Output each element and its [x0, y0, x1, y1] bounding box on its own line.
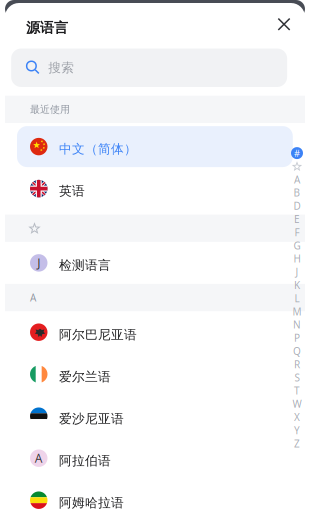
button[interactable]: T [291, 384, 303, 397]
button[interactable]: B [291, 186, 303, 199]
button[interactable]: 阿姆哈拉语 [5, 479, 305, 520]
button[interactable]: N [291, 318, 303, 331]
button[interactable]: 关闭 [269, 9, 299, 39]
staticText: B [293, 186, 300, 199]
button[interactable]: E [291, 212, 303, 226]
button[interactable]: X [291, 410, 303, 424]
staticText: J [37, 255, 40, 271]
staticText: D [293, 199, 300, 213]
staticText: E [294, 212, 300, 226]
button[interactable]: S [291, 371, 303, 384]
staticText: 英语 [59, 183, 85, 199]
button[interactable]: K [291, 278, 303, 292]
button[interactable]: A [5, 437, 305, 479]
button[interactable]: A [291, 173, 303, 186]
staticText: 最近使用 [30, 103, 70, 116]
button[interactable]: P [291, 331, 303, 344]
staticText: Z [294, 437, 300, 450]
staticText: A [35, 450, 43, 466]
staticText: H [293, 252, 300, 265]
staticText: 爱尔兰语 [59, 369, 111, 385]
staticText: S [294, 371, 299, 384]
button[interactable]: 中文（简体） [5, 126, 305, 168]
button[interactable]: 爱沙尼亚语 [5, 395, 305, 437]
button[interactable]: L [291, 292, 303, 305]
staticText: W [292, 397, 301, 411]
button[interactable]: M [291, 305, 303, 318]
staticText: J [295, 265, 298, 279]
staticText: M [292, 305, 301, 318]
staticText: X [294, 410, 300, 424]
button[interactable]: G [291, 239, 303, 252]
staticText: 阿尔巴尼亚语 [59, 327, 137, 343]
staticText: P [294, 331, 300, 345]
staticText: 阿姆哈拉语 [59, 495, 124, 511]
button[interactable]: 收藏 [291, 160, 303, 173]
staticText: 检测语言 [59, 257, 111, 273]
staticText: 爱沙尼亚语 [59, 411, 124, 427]
button[interactable]: Q [291, 344, 303, 358]
staticText: # [294, 147, 300, 159]
staticText: G [293, 239, 300, 252]
button[interactable]: H [291, 252, 303, 265]
button[interactable]: J [291, 265, 303, 278]
button[interactable]: # [291, 146, 303, 160]
staticText: L [294, 291, 299, 305]
button[interactable]: Z [291, 437, 303, 450]
staticText: A [30, 291, 36, 304]
staticText: A [294, 173, 300, 186]
button[interactable]: 英语 [5, 168, 305, 210]
staticText: 中文（简体） [59, 141, 137, 157]
staticText: Y [294, 423, 300, 437]
button[interactable]: J [5, 242, 305, 284]
staticText: F [294, 225, 299, 239]
staticText: 搜索 [48, 60, 74, 76]
staticText: Q [293, 344, 301, 358]
staticText: K [294, 278, 300, 292]
button[interactable]: W [291, 397, 303, 410]
button[interactable]: R [291, 358, 303, 371]
button[interactable]: 爱尔兰语 [5, 353, 305, 395]
button[interactable]: F [291, 226, 303, 239]
staticText: 源语言 [26, 19, 68, 36]
button[interactable]: Y [291, 424, 303, 437]
staticText: 阿拉伯语 [59, 453, 111, 469]
staticText: R [294, 357, 300, 371]
button[interactable]: 搜索 [11, 48, 287, 87]
button[interactable]: 阿尔巴尼亚语 [5, 311, 305, 353]
button[interactable]: D [291, 199, 303, 212]
staticText: N [293, 318, 301, 331]
staticText: T [294, 384, 300, 397]
